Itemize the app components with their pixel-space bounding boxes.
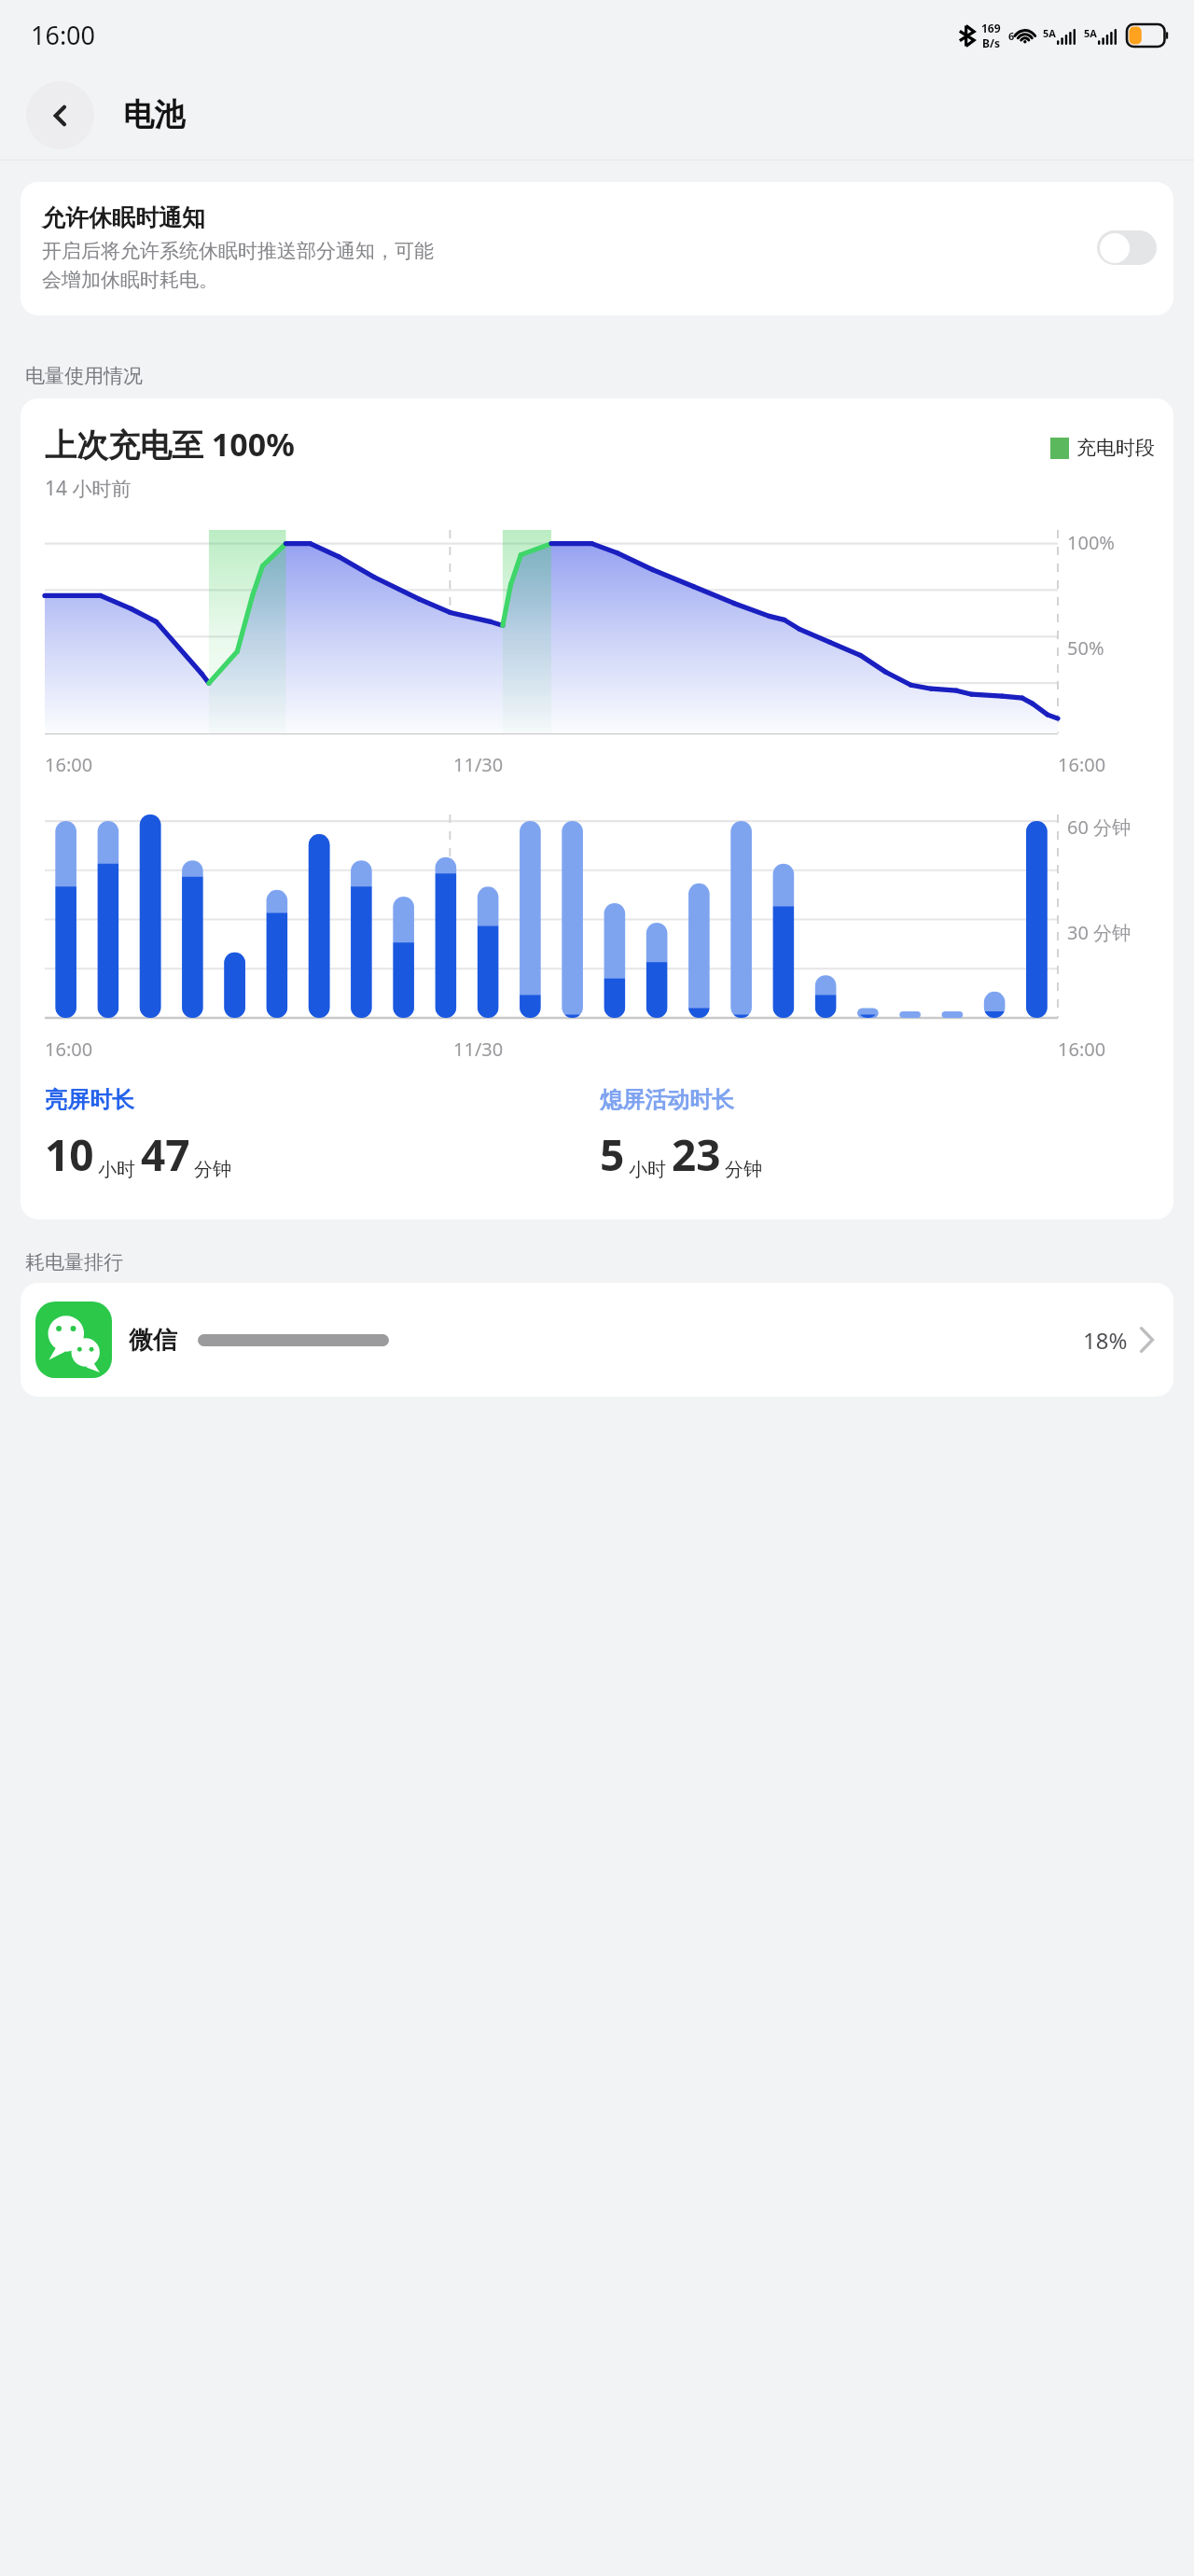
button[interactable]: Back <box>26 81 94 149</box>
staticText: 11/30 <box>453 752 504 777</box>
staticText: 169 <box>981 21 1001 35</box>
staticText: 小时 <box>629 1158 666 1181</box>
staticText: 16:00 <box>45 752 93 777</box>
staticText: 50% <box>1067 635 1104 661</box>
staticText: 100% <box>1067 530 1115 555</box>
staticText: 10 <box>45 1125 94 1184</box>
staticText: 微信 <box>129 1325 177 1356</box>
staticText: 允许休眠时通知 <box>42 203 205 232</box>
staticText: B/s <box>982 35 1000 50</box>
staticText: 6 <box>1008 29 1015 43</box>
staticText: 分钟 <box>725 1158 762 1181</box>
staticText: 小时 <box>98 1158 135 1181</box>
staticText: 14 小时前 <box>45 475 132 502</box>
staticText: 30 分钟 <box>1067 920 1132 945</box>
staticText: 16:00 <box>1058 1037 1106 1062</box>
staticText: 18% <box>1083 1325 1128 1356</box>
button[interactable]: 允许休眠时通知开关 <box>1097 230 1157 265</box>
staticText: 5A <box>1043 26 1056 40</box>
staticText: 60 分钟 <box>1067 815 1132 840</box>
staticText: 亮屏时长 <box>45 1086 134 1114</box>
button[interactable]: 允许休眠时通知 <box>21 182 1173 315</box>
staticText: 16:00 <box>31 18 96 52</box>
staticText: 耗电量排行 <box>25 1250 123 1274</box>
staticText: 23 <box>672 1125 721 1184</box>
staticText: 47 <box>141 1125 190 1184</box>
staticText: 分钟 <box>194 1158 231 1181</box>
staticText: 上次充电至 100% <box>45 423 295 466</box>
staticText: 5 <box>600 1125 625 1184</box>
staticText: 11/30 <box>453 1037 504 1062</box>
staticText: 开启后将允许系统休眠时推送部分通知，可能 会增加休眠时耗电。 <box>42 239 434 292</box>
staticText: 16:00 <box>45 1037 93 1062</box>
button[interactable]: 微信 <box>21 1283 1173 1397</box>
staticText: 熄屏活动时长 <box>600 1086 734 1114</box>
button[interactable]: 上次充电至 100% <box>21 398 1173 1219</box>
staticText: 电量使用情况 <box>25 364 143 388</box>
staticText: 充电时段 <box>1076 436 1155 460</box>
staticText: 5A <box>1084 26 1097 40</box>
staticText: 16:00 <box>1058 752 1106 777</box>
staticText: 电池 <box>123 95 185 134</box>
